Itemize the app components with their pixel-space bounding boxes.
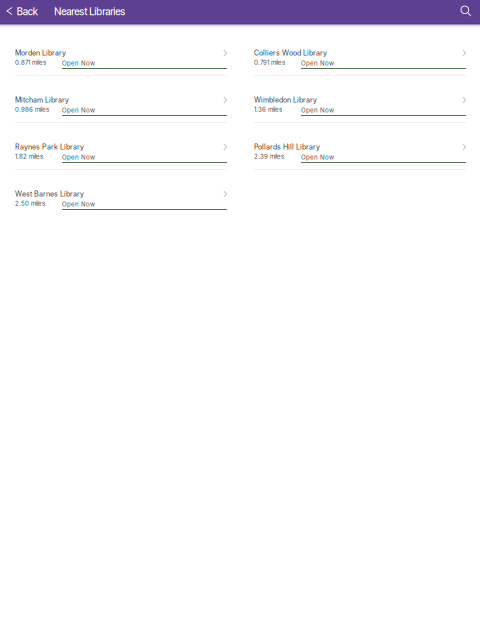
staticText: Morden Library [15,49,66,57]
staticText: Back [17,5,38,18]
button[interactable]: Pollards Hill Library [254,142,466,163]
staticText: Pollards Hill Library [254,143,320,151]
staticText: Mitcham Library [15,96,69,104]
button[interactable]: Morden Library [15,48,227,69]
staticText: Raynes Park Library [15,143,84,151]
staticText: 2.50 miles [15,200,45,207]
staticText: 1.82 miles [15,153,43,160]
staticText: 2.39 miles [254,153,284,160]
button[interactable]: Search [449,0,480,24]
staticText: Open Now [301,60,334,67]
button[interactable]: Nearest Libraries [44,0,131,24]
staticText: 0.986 miles [15,106,49,113]
staticText: 0.871 miles [15,59,46,66]
staticText: Wimbledon Library [254,96,317,104]
staticText: Open Now [62,60,95,67]
staticText: Nearest Libraries [54,5,125,18]
staticText: Open Now [301,154,334,161]
staticText: 0.791 miles [254,59,285,66]
staticText: Open Now [301,107,334,114]
staticText: Open Now [62,154,95,161]
staticText: 1.36 miles [254,106,282,113]
button[interactable]: Wimbledon Library [254,95,466,116]
staticText: Colliers Wood Library [254,49,327,57]
button[interactable]: Mitcham Library [15,95,227,116]
staticText: Open Now [62,107,95,114]
staticText: Open Now [62,201,95,208]
staticText: West Barnes Library [15,190,84,198]
button[interactable]: Raynes Park Library [15,142,227,163]
button[interactable]: West Barnes Library [15,189,227,210]
button[interactable]: Back [0,0,44,24]
button[interactable]: Colliers Wood Library [254,48,466,69]
